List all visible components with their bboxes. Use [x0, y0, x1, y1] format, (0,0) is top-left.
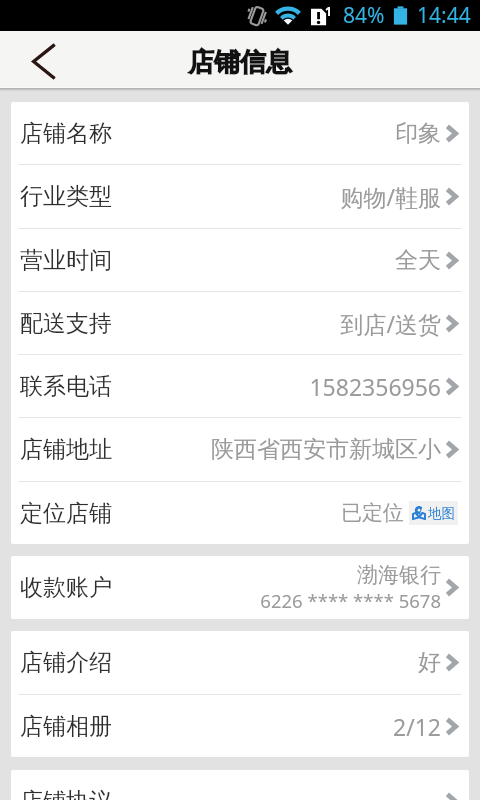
- staticText: 印象: [395, 119, 441, 148]
- button[interactable]: 营业时间: [11, 229, 469, 291]
- button[interactable]: 配送支持: [11, 292, 469, 354]
- button[interactable]: 店铺协议: [11, 770, 469, 800]
- staticText: 全天: [395, 246, 441, 275]
- button[interactable]: 店铺相册: [11, 695, 469, 757]
- staticText: 配送支持: [20, 309, 112, 338]
- staticText: 84%: [343, 1, 385, 30]
- staticText: 购物/鞋服: [340, 181, 441, 212]
- staticText: 营业时间: [20, 246, 112, 275]
- staticText: 1: [325, 3, 332, 19]
- button[interactable]: 店铺地址: [11, 418, 469, 481]
- staticText: 店铺地址: [20, 435, 112, 464]
- button[interactable]: 地图: [409, 501, 458, 525]
- staticText: 1582356956: [309, 371, 441, 402]
- staticText: 到店/送货: [340, 308, 441, 339]
- staticText: 店铺相册: [20, 712, 112, 741]
- staticText: 6226 **** **** 5678: [260, 588, 441, 613]
- staticText: 店铺名称: [20, 119, 112, 148]
- staticText: 地图: [428, 505, 455, 522]
- staticText: 定位店铺: [20, 499, 112, 528]
- staticText: 联系电话: [20, 372, 112, 401]
- staticText: 渤海银行: [357, 562, 441, 588]
- button[interactable]: 收款账户: [11, 556, 469, 619]
- button[interactable]: 店铺介绍: [11, 631, 469, 694]
- staticText: 行业类型: [20, 182, 112, 211]
- staticText: 已定位: [341, 500, 404, 526]
- button[interactable]: 联系电话: [11, 355, 469, 417]
- button[interactable]: Back: [0, 31, 86, 87]
- staticText: 好: [418, 648, 441, 677]
- staticText: 2/12: [392, 711, 441, 742]
- button[interactable]: 行业类型: [11, 165, 469, 228]
- staticText: 店铺介绍: [20, 648, 112, 677]
- staticText: 14:44: [417, 1, 471, 30]
- staticText: 收款账户: [20, 573, 112, 602]
- button[interactable]: 店铺名称: [11, 102, 469, 164]
- staticText: 店铺协议: [20, 787, 112, 800]
- staticText: 店铺信息: [188, 46, 292, 79]
- button[interactable]: 定位店铺: [11, 482, 469, 544]
- staticText: 陕西省西安市新城区小: [211, 435, 441, 464]
